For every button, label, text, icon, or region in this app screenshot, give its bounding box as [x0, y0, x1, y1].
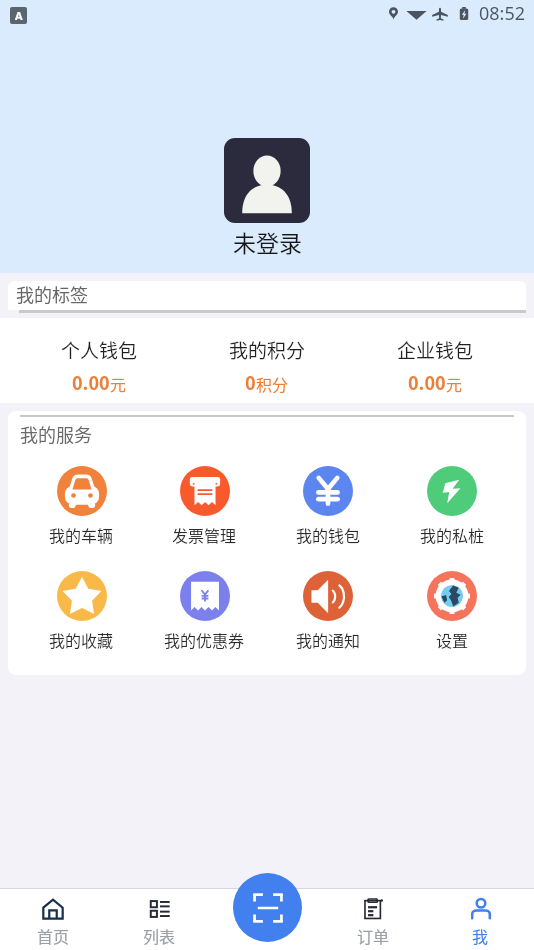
staticText: 订单 — [357, 924, 390, 947]
button[interactable]: 我的车辆 — [20, 466, 143, 546]
button[interactable]: 我的积分 — [183, 326, 351, 395]
staticText: 我 — [472, 924, 489, 947]
staticText: 列表 — [143, 924, 176, 947]
button[interactable]: 发票管理 — [143, 466, 266, 546]
button[interactable]: 订单 — [320, 889, 427, 947]
staticText: 我的服务 — [20, 421, 92, 447]
button[interactable]: 设置 — [390, 571, 514, 651]
button[interactable]: 我的钱包 — [266, 466, 390, 546]
staticText: 元 — [446, 372, 463, 395]
button[interactable]: 我的标签 — [8, 281, 526, 313]
button[interactable]: 我的优惠券 — [143, 571, 266, 651]
button[interactable]: 首页 — [0, 889, 106, 947]
staticText: 元 — [110, 372, 127, 395]
staticText: 我的车辆 — [49, 523, 114, 546]
button[interactable]: 我的收藏 — [20, 571, 143, 651]
staticText: 我的优惠券 — [164, 628, 245, 651]
button[interactable]: 个人钱包 — [15, 326, 183, 395]
staticText: 发票管理 — [172, 523, 237, 546]
button[interactable]: 我的通知 — [266, 571, 390, 651]
staticText: A — [15, 8, 23, 23]
staticText: 未登录 — [233, 225, 302, 258]
staticText: 企业钱包 — [397, 336, 474, 364]
staticText: 我的标签 — [16, 281, 88, 307]
button[interactable]: 企业钱包 — [351, 326, 519, 395]
staticText: 0 — [245, 369, 256, 395]
button[interactable]: 我 — [427, 889, 534, 947]
button[interactable]: 我的私桩 — [390, 466, 514, 546]
staticText: 我的私桩 — [420, 523, 485, 546]
staticText: 我的钱包 — [296, 523, 361, 546]
staticText: 我的积分 — [229, 336, 306, 364]
staticText: 我的通知 — [296, 628, 361, 651]
button[interactable]: Profile avatar — [224, 138, 310, 223]
staticText: 设置 — [436, 628, 469, 651]
staticText: 0.00 — [408, 369, 446, 395]
button[interactable]: Scan QR code — [233, 873, 302, 942]
button[interactable]: 列表 — [106, 889, 213, 947]
button[interactable]: App badge — [10, 7, 27, 24]
staticText: 我的收藏 — [49, 628, 114, 651]
staticText: 积分 — [256, 372, 289, 395]
staticText: 首页 — [37, 924, 70, 947]
staticText: 个人钱包 — [61, 336, 138, 364]
staticText: 08:52 — [479, 1, 526, 26]
staticText: 0.00 — [72, 369, 110, 395]
